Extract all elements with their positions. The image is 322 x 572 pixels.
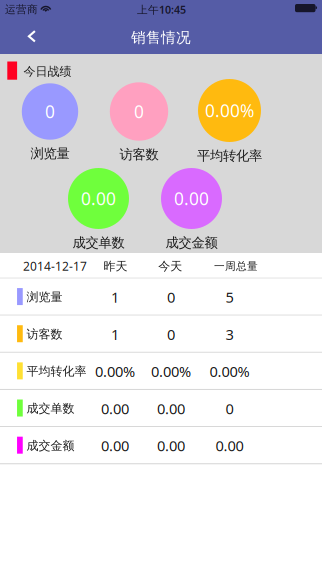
staticText: 5 bbox=[225, 287, 233, 307]
button[interactable]: Back bbox=[10, 19, 54, 53]
staticText: 成交单数 bbox=[72, 235, 124, 251]
staticText: 0.00 bbox=[157, 399, 185, 418]
staticText: 成交金额 bbox=[27, 438, 75, 453]
staticText: 0.00% bbox=[151, 362, 191, 381]
button[interactable]: 0.00% bbox=[0, 54, 322, 253]
staticText: 今日战绩 bbox=[23, 64, 71, 79]
staticText: 浏览量 bbox=[30, 145, 69, 162]
button[interactable]: 0 bbox=[0, 54, 322, 253]
staticText: 1 bbox=[111, 287, 119, 307]
staticText: 0 bbox=[45, 100, 55, 123]
staticText: 0.00% bbox=[95, 362, 135, 381]
staticText: 0 bbox=[167, 324, 175, 344]
staticText: 访客数 bbox=[119, 146, 158, 163]
staticText: 运营商 bbox=[5, 3, 38, 16]
staticText: 0.00% bbox=[205, 99, 254, 122]
staticText: 0.00 bbox=[81, 187, 116, 210]
staticText: 成交金额 bbox=[165, 235, 217, 251]
button[interactable]: 成交金额 bbox=[0, 427, 322, 464]
staticText: 0.00 bbox=[101, 399, 129, 418]
staticText: 昨天 bbox=[103, 259, 127, 273]
staticText: 0 bbox=[134, 100, 144, 123]
button[interactable]: 0 bbox=[0, 54, 322, 253]
button[interactable]: 成交单数 bbox=[0, 390, 322, 427]
staticText: 平均转化率 bbox=[197, 148, 262, 164]
staticText: 0 bbox=[225, 399, 233, 418]
staticText: 今天 bbox=[158, 259, 182, 273]
staticText: 0.00 bbox=[174, 187, 209, 210]
staticText: 浏览量 bbox=[27, 290, 63, 304]
button[interactable]: 0.00 bbox=[0, 54, 322, 253]
staticText: 2014-12-17 bbox=[23, 258, 87, 274]
staticText: 0.00 bbox=[215, 436, 243, 455]
staticText: 0.00% bbox=[209, 362, 249, 381]
staticText: 上午10:45 bbox=[137, 2, 186, 17]
staticText: 访客数 bbox=[27, 327, 63, 342]
button[interactable]: 浏览量 bbox=[0, 278, 322, 316]
button[interactable]: 平均转化率 bbox=[0, 353, 322, 390]
staticText: 销售情况 bbox=[131, 28, 191, 46]
staticText: 0.00 bbox=[101, 436, 129, 455]
button[interactable]: 访客数 bbox=[0, 316, 322, 353]
staticText: 1 bbox=[111, 324, 119, 344]
staticText: 平均转化率 bbox=[27, 364, 87, 379]
staticText: 成交单数 bbox=[27, 401, 75, 416]
button[interactable]: 0.00 bbox=[0, 54, 322, 253]
staticText: 3 bbox=[225, 324, 233, 344]
staticText: 0.00 bbox=[157, 436, 185, 455]
staticText: 一周总量 bbox=[214, 260, 258, 273]
staticText: 0 bbox=[167, 287, 175, 307]
